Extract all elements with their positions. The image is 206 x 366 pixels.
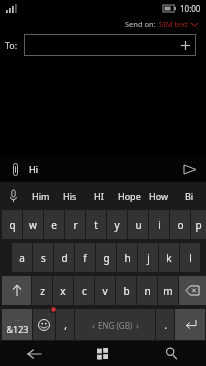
staticText: › <box>136 319 139 331</box>
staticText: n <box>144 284 151 298</box>
button[interactable]: t <box>86 210 106 239</box>
button[interactable]: h <box>117 243 137 272</box>
button[interactable]: u <box>128 210 148 239</box>
staticText: t <box>94 218 98 232</box>
button[interactable]: z <box>32 276 52 305</box>
staticText: 10:00 <box>180 3 201 14</box>
button[interactable]: d <box>54 243 74 272</box>
staticText: . <box>164 318 167 332</box>
staticText: g <box>103 251 110 265</box>
staticText: Send on: <box>125 19 156 29</box>
staticText: w <box>29 218 37 232</box>
button[interactable]: e <box>44 210 64 239</box>
staticText: e <box>51 218 57 232</box>
button[interactable] <box>24 34 196 56</box>
staticText: SIM text <box>159 19 188 29</box>
button[interactable]: Voice input <box>0 182 26 209</box>
staticText: HI <box>94 190 104 202</box>
staticText: k <box>166 251 172 265</box>
button[interactable]: k <box>159 243 179 272</box>
button[interactable]: , <box>56 309 74 340</box>
button[interactable]: y <box>107 210 127 239</box>
staticText: p <box>195 218 202 232</box>
button[interactable]: p <box>191 210 206 239</box>
button[interactable]: g <box>96 243 116 272</box>
staticText: Hi <box>29 163 38 175</box>
staticText: s <box>41 251 46 265</box>
button[interactable]: Back <box>0 341 68 366</box>
button[interactable]: Send on: <box>0 16 198 32</box>
button[interactable]: Search <box>137 341 206 366</box>
staticText: j <box>147 251 150 265</box>
button[interactable]: r <box>65 210 85 239</box>
staticText: ENG (GB) <box>98 320 133 331</box>
staticText: &123 <box>6 323 29 335</box>
staticText: Him <box>32 190 50 202</box>
staticText: u <box>135 218 142 232</box>
staticText: v <box>102 284 108 298</box>
button[interactable]: Bi <box>174 182 204 209</box>
staticText: His <box>63 190 77 202</box>
staticText: z <box>40 284 45 298</box>
button[interactable]: a <box>12 243 32 272</box>
button[interactable]: How <box>144 182 174 209</box>
staticText: f <box>83 251 87 265</box>
button[interactable]: x <box>53 276 73 305</box>
staticText: x <box>60 284 66 298</box>
staticText: , <box>64 318 67 332</box>
staticText: h <box>124 251 131 265</box>
button[interactable]: ‹ <box>75 309 155 340</box>
button[interactable]: b <box>116 276 136 305</box>
staticText: r <box>73 218 78 232</box>
staticText: o <box>177 218 184 232</box>
button[interactable]: s <box>33 243 53 272</box>
staticText: ... <box>15 315 20 323</box>
staticText: ‹ <box>92 319 95 331</box>
staticText: y <box>114 218 120 232</box>
button[interactable]: i <box>149 210 169 239</box>
staticText: l <box>189 251 192 265</box>
button[interactable]: m <box>158 276 178 305</box>
staticText: b <box>123 284 130 298</box>
button[interactable]: ... <box>2 309 32 340</box>
button[interactable]: l <box>180 243 200 272</box>
staticText: i <box>158 218 161 232</box>
button[interactable]: j <box>138 243 158 272</box>
button[interactable]: f <box>75 243 95 272</box>
staticText: d <box>61 251 68 265</box>
button[interactable]: Hope <box>114 182 144 209</box>
button[interactable]: Start <box>68 341 137 366</box>
staticText: Bi <box>185 190 194 202</box>
button[interactable]: . <box>156 309 174 340</box>
button[interactable]: q <box>2 210 22 239</box>
button[interactable] <box>33 309 55 340</box>
button[interactable] <box>179 276 206 305</box>
button[interactable]: c <box>74 276 94 305</box>
button[interactable]: His <box>55 182 84 209</box>
button[interactable] <box>175 309 205 340</box>
staticText: q <box>9 218 16 232</box>
button[interactable]: Him <box>26 182 55 209</box>
button[interactable]: o <box>170 210 190 239</box>
button[interactable]: Send <box>181 160 199 178</box>
staticText: a <box>19 251 25 265</box>
staticText: m <box>163 284 173 298</box>
button[interactable] <box>2 276 31 305</box>
button[interactable]: v <box>95 276 115 305</box>
staticText: Hope <box>118 190 141 202</box>
button[interactable]: HI <box>84 182 114 209</box>
button[interactable]: Attach <box>7 161 23 177</box>
button[interactable]: n <box>137 276 157 305</box>
button[interactable]: w <box>23 210 43 239</box>
staticText: To: <box>5 39 18 51</box>
staticText: How <box>149 190 169 202</box>
staticText: c <box>82 284 87 298</box>
